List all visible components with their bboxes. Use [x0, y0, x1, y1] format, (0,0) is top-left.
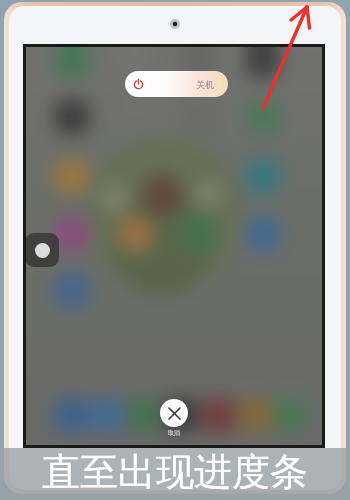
staticText: 直至出现进度条: [42, 448, 308, 496]
staticText: 取消: [168, 429, 180, 437]
staticText: 关机: [196, 79, 214, 90]
button[interactable]: 取消: [160, 399, 188, 427]
button[interactable]: AssistiveTouch: [26, 233, 59, 267]
button[interactable]: 关机: [125, 71, 228, 97]
